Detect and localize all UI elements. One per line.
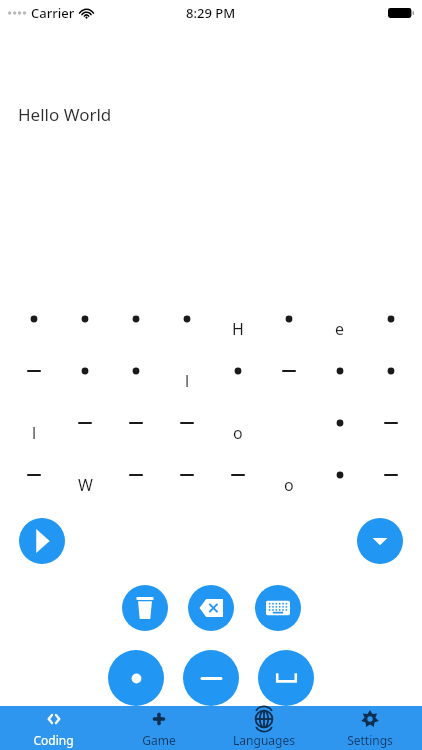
button[interactable] — [265, 305, 313, 353]
button[interactable] — [10, 357, 58, 405]
staticText: 8:29 PM — [186, 4, 236, 22]
button[interactable] — [112, 357, 160, 405]
button[interactable] — [163, 461, 211, 509]
button[interactable]: Play — [19, 518, 65, 564]
button[interactable] — [112, 461, 160, 509]
staticText: o — [284, 474, 294, 496]
button[interactable] — [61, 409, 109, 457]
button[interactable]: o — [214, 409, 262, 457]
button[interactable]: Dash — [183, 650, 239, 706]
button[interactable]: Game — [106, 706, 211, 750]
button[interactable] — [316, 357, 364, 405]
staticText: Game — [142, 732, 176, 748]
button[interactable] — [265, 357, 313, 405]
staticText: e — [335, 318, 345, 340]
button[interactable] — [163, 305, 211, 353]
button[interactable] — [316, 409, 364, 457]
button[interactable] — [316, 461, 364, 509]
staticText: Coding — [33, 732, 74, 748]
button[interactable]: l — [163, 357, 211, 405]
button[interactable] — [163, 409, 211, 457]
button[interactable] — [10, 461, 58, 509]
button[interactable] — [367, 409, 415, 457]
button[interactable] — [112, 305, 160, 353]
staticText: Settings — [347, 732, 393, 748]
button[interactable]: Toggle keyboard — [255, 585, 301, 631]
button[interactable] — [61, 305, 109, 353]
button[interactable] — [214, 461, 262, 509]
button[interactable]: Space — [258, 650, 314, 706]
button[interactable] — [214, 357, 262, 405]
staticText: Languages — [233, 732, 295, 748]
button[interactable] — [367, 357, 415, 405]
staticText: Carrier — [31, 4, 75, 22]
button[interactable] — [367, 305, 415, 353]
button[interactable]: Backspace — [188, 585, 234, 631]
button[interactable]: Languages — [211, 706, 317, 750]
button[interactable] — [61, 357, 109, 405]
button[interactable]: Clear all — [122, 585, 168, 631]
button[interactable]: More options — [357, 518, 403, 564]
button[interactable]: Dot — [108, 650, 164, 706]
button[interactable]: Coding — [0, 706, 106, 750]
button[interactable] — [367, 461, 415, 509]
staticText: Hello World — [18, 103, 112, 126]
staticText: H — [232, 318, 244, 340]
staticText: l — [32, 422, 37, 444]
button[interactable]: e — [316, 305, 364, 353]
button[interactable]: o — [265, 461, 313, 509]
button[interactable] — [112, 409, 160, 457]
button[interactable]: l — [10, 409, 58, 457]
staticText: W — [78, 474, 93, 496]
button[interactable]: W — [61, 461, 109, 509]
button[interactable]: H — [214, 305, 262, 353]
staticText: o — [233, 422, 243, 444]
staticText: l — [185, 370, 190, 392]
button[interactable]: Settings — [317, 706, 422, 750]
button[interactable] — [10, 305, 58, 353]
